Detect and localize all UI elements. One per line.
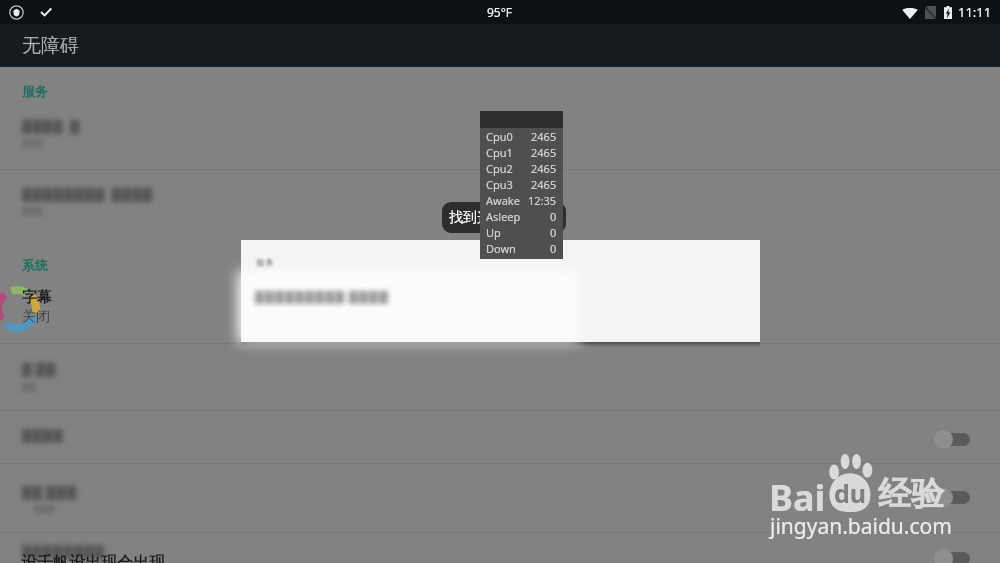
staticText: Awake [486,193,520,208]
button[interactable]: Toggle [926,425,978,453]
staticText: 经验 [878,473,944,515]
staticText: ████ [22,429,64,443]
staticText: 95°F [487,4,513,20]
button[interactable]: Toggle [926,483,978,511]
button[interactable] [0,180,1000,224]
button[interactable]: Toggle [926,544,978,563]
button[interactable] [0,423,1000,467]
staticText: Cpu0 [486,129,513,144]
staticText: 关闭 [22,308,50,326]
staticText: Cpu1 [486,145,513,160]
button[interactable]: Security [9,5,24,20]
staticText: 字幕 [22,288,52,307]
staticText: ███ [22,207,44,216]
staticText: ███ [34,505,56,514]
staticText: Asleep [486,209,521,224]
staticText: Cpu3 [486,177,513,192]
staticText: 设千帆设出现会出现 [21,553,165,563]
button[interactable] [0,478,1000,522]
staticText: Cpu2 [486,161,513,176]
button[interactable] [0,355,1000,399]
staticText: 2465 [531,177,557,192]
staticText: 11:11 [958,3,992,21]
staticText: 2465 [531,161,557,176]
staticText: ██ ███ [22,484,78,500]
staticText: Bai [769,473,826,522]
button[interactable] [0,112,1000,156]
button[interactable]: 无障碍 [0,24,1000,67]
staticText: 2465 [531,129,557,144]
button[interactable]: 找到这个选项后 [442,202,566,233]
staticText: █ ██ [22,361,57,377]
staticText: ██ [22,383,37,392]
staticText: ████████ ████ [22,186,154,202]
staticText: jingyan.baidu.com [770,512,952,541]
staticText: 服务 [256,257,274,268]
staticText: ████████ [22,545,106,559]
staticText: 系统 [22,257,48,273]
staticText: 2465 [531,145,557,160]
staticText: ████ █ [22,118,81,134]
button[interactable]: Done [39,5,53,19]
staticText: 0 [550,225,557,240]
staticText: 12:35 [528,193,557,208]
staticText: 服务 [22,83,48,99]
staticText: Up [486,225,501,240]
staticText: 0 [550,241,557,256]
button[interactable] [0,539,1000,563]
staticText: 0 [550,209,557,224]
staticText: 无障碍 [22,34,79,58]
staticText: █████████ ████ [255,289,390,304]
staticText: ███ [22,139,44,148]
staticText: 找到这个选项后 [449,209,547,227]
staticText: du [834,476,867,510]
button[interactable]: 字幕 [0,282,1000,340]
staticText: Down [486,241,516,256]
